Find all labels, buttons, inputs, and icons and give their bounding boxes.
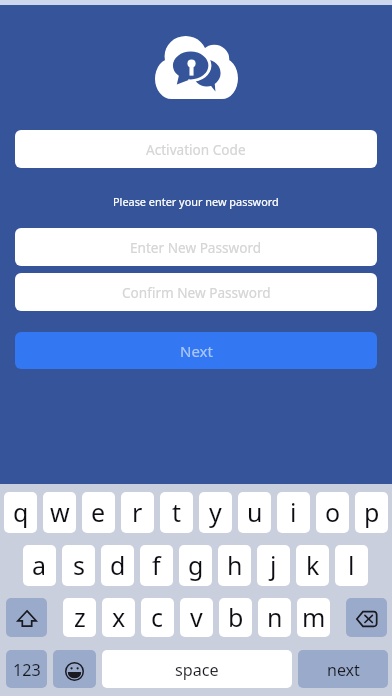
button[interactable]: space xyxy=(102,650,292,688)
staticText: k xyxy=(306,548,320,582)
button[interactable]: h xyxy=(218,545,251,586)
button[interactable]: o xyxy=(316,492,349,533)
button[interactable]: z xyxy=(63,598,96,637)
button[interactable]: i xyxy=(277,492,310,533)
button[interactable]: m xyxy=(297,598,330,637)
staticText: m xyxy=(302,600,326,634)
staticText: z xyxy=(74,600,86,634)
button[interactable]: Activation Code xyxy=(15,130,377,168)
staticText: 123 xyxy=(13,659,41,681)
staticText: Confirm New Password xyxy=(122,283,271,302)
button[interactable]: s xyxy=(62,545,95,586)
staticText: t xyxy=(172,495,182,529)
staticText: b xyxy=(228,600,244,634)
button[interactable]: y xyxy=(199,492,232,533)
staticText: Please enter your new password xyxy=(113,194,279,209)
button[interactable]: Backspace xyxy=(346,598,387,637)
staticText: e xyxy=(91,495,106,529)
staticText: l xyxy=(348,548,355,582)
staticText: x xyxy=(112,600,126,634)
button[interactable]: d xyxy=(101,545,134,586)
button[interactable]: n xyxy=(258,598,291,637)
staticText: r xyxy=(132,495,143,529)
button[interactable]: c xyxy=(141,598,174,637)
button[interactable]: Confirm New Password xyxy=(15,273,377,311)
staticText: s xyxy=(73,548,85,582)
staticText: o xyxy=(325,495,341,529)
button[interactable]: k xyxy=(296,545,329,586)
button[interactable]: w xyxy=(43,492,76,533)
staticText: n xyxy=(267,600,283,634)
staticText: p xyxy=(364,495,380,529)
staticText: Next xyxy=(180,341,213,361)
staticText: a xyxy=(32,548,47,582)
button[interactable]: g xyxy=(179,545,212,586)
staticText: w xyxy=(50,495,70,529)
button[interactable]: t xyxy=(160,492,193,533)
staticText: Activation Code xyxy=(146,140,246,159)
staticText: i xyxy=(290,495,297,529)
staticText: d xyxy=(110,548,126,582)
button[interactable]: p xyxy=(355,492,388,533)
staticText: next xyxy=(327,659,360,681)
button[interactable]: x xyxy=(102,598,135,637)
button[interactable]: 123 xyxy=(6,650,47,688)
staticText: q xyxy=(13,495,29,529)
button[interactable]: u xyxy=(238,492,271,533)
button[interactable]: e xyxy=(82,492,115,533)
button[interactable]: Next xyxy=(15,332,377,369)
button[interactable]: Emoji xyxy=(53,650,96,688)
staticText: v xyxy=(190,600,203,634)
staticText: j xyxy=(270,548,277,582)
staticText: y xyxy=(209,495,222,529)
button[interactable]: l xyxy=(335,545,368,586)
button[interactable]: next xyxy=(298,650,388,688)
staticText: space xyxy=(175,659,219,681)
staticText: h xyxy=(227,548,243,582)
button[interactable]: f xyxy=(140,545,173,586)
staticText: f xyxy=(152,548,161,582)
button[interactable]: j xyxy=(257,545,290,586)
button[interactable]: Enter New Password xyxy=(15,228,377,266)
staticText: u xyxy=(247,495,263,529)
button[interactable]: r xyxy=(121,492,154,533)
button[interactable]: a xyxy=(23,545,56,586)
button[interactable]: v xyxy=(180,598,213,637)
staticText: g xyxy=(188,548,204,582)
button[interactable]: Shift xyxy=(6,598,47,637)
button[interactable]: b xyxy=(219,598,252,637)
button[interactable]: q xyxy=(4,492,37,533)
staticText: Enter New Password xyxy=(130,238,262,257)
staticText: c xyxy=(151,600,164,634)
